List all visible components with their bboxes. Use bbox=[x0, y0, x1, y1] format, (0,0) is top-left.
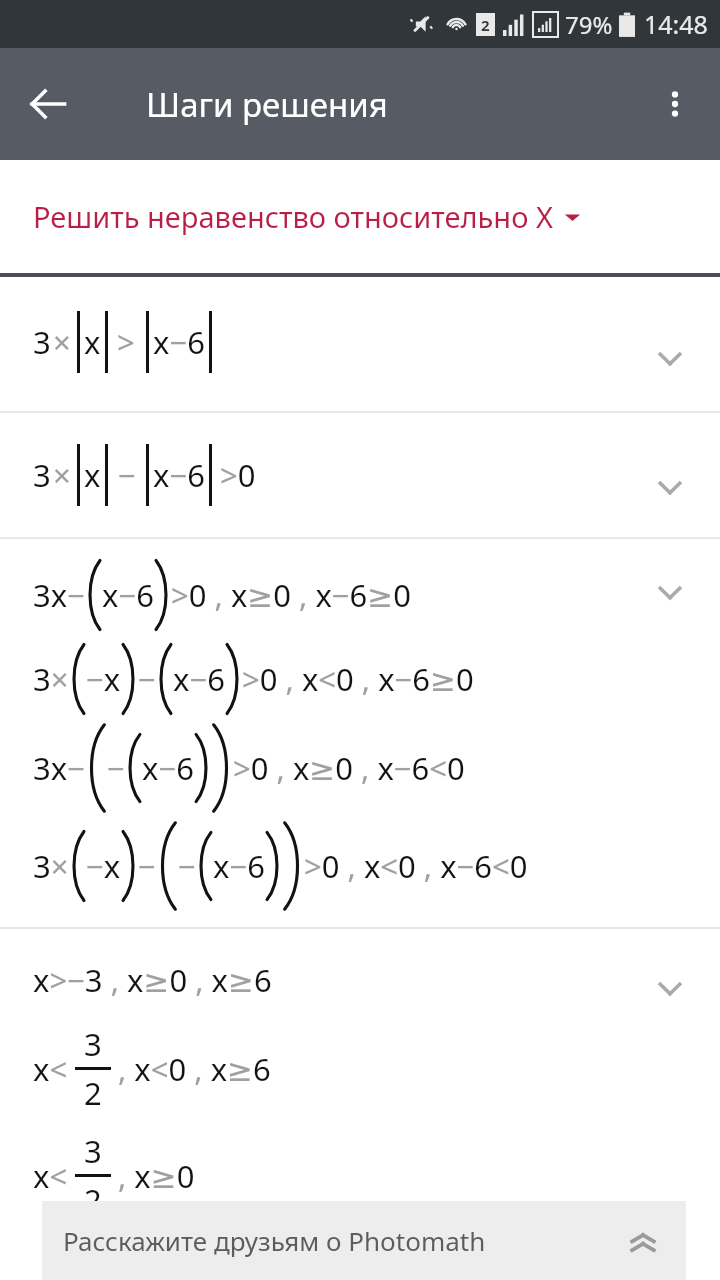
staticText: x< bbox=[33, 1155, 68, 1197]
staticText: 3x− bbox=[33, 747, 85, 789]
staticText: > bbox=[117, 321, 135, 363]
staticText: 14:48 bbox=[644, 7, 708, 41]
staticText: 2 bbox=[84, 1072, 102, 1114]
button[interactable]: 3 bbox=[0, 311, 720, 377]
staticText: 3x− bbox=[33, 574, 85, 616]
staticText: x−6 bbox=[102, 574, 154, 616]
staticText: x>−3 , x≥0 , x≥6 bbox=[33, 959, 272, 1001]
staticText: , x<0 , x≥6 bbox=[118, 1048, 271, 1090]
staticText: 3 bbox=[84, 1130, 102, 1172]
staticText: >0 , x<0 , x−6<0 bbox=[304, 845, 528, 887]
button[interactable]: 3x− bbox=[0, 539, 720, 911]
button[interactable]: Ещё bbox=[646, 75, 704, 133]
staticText: Расскажите друзьям о Photomath bbox=[63, 1223, 620, 1258]
staticText: >0 , x<0 , x−6≥0 bbox=[242, 658, 474, 700]
button[interactable]: 3 bbox=[0, 444, 720, 506]
button[interactable]: Решить неравенство относительно X bbox=[0, 160, 720, 273]
staticText: 2 bbox=[84, 1179, 102, 1221]
staticText: − bbox=[107, 747, 125, 789]
staticText: 3 bbox=[84, 1023, 102, 1065]
other: Развернуть bbox=[620, 1218, 666, 1264]
staticText: x−6 bbox=[173, 658, 225, 700]
staticText: − bbox=[138, 658, 156, 700]
staticText: 3× bbox=[33, 658, 69, 700]
staticText: , x≥0 bbox=[118, 1155, 195, 1197]
staticText: x−6 bbox=[153, 454, 205, 496]
staticText: >0 , x≥0 , x−6<0 bbox=[233, 747, 465, 789]
staticText: 2 bbox=[481, 15, 490, 35]
staticText: × bbox=[53, 321, 71, 363]
staticText: x−6 bbox=[142, 747, 194, 789]
staticText: 3 bbox=[33, 454, 51, 496]
staticText: −x bbox=[86, 845, 121, 887]
staticText: x bbox=[84, 321, 101, 363]
button[interactable]: x>−3 , x≥0 , x≥6 bbox=[0, 929, 720, 1221]
staticText: Шаги решения bbox=[146, 82, 388, 127]
button[interactable]: Назад bbox=[16, 72, 80, 136]
staticText: −x bbox=[86, 658, 121, 700]
staticText: − bbox=[118, 454, 136, 496]
staticText: 79% bbox=[565, 8, 613, 41]
staticText: x−6 bbox=[213, 845, 265, 887]
staticText: >0 , x≥0 , x−6≥0 bbox=[171, 574, 411, 616]
staticText: × bbox=[53, 454, 71, 496]
staticText: x bbox=[84, 454, 101, 496]
staticText: Решить неравенство относительно X bbox=[33, 197, 553, 236]
staticText: 3 bbox=[33, 321, 51, 363]
button[interactable]: Расскажите друзьям о Photomath bbox=[42, 1201, 686, 1280]
staticText: x< bbox=[33, 1048, 68, 1090]
staticText: 3× bbox=[33, 845, 69, 887]
staticText: − bbox=[138, 845, 156, 887]
staticText: − bbox=[178, 845, 196, 887]
staticText: x−6 bbox=[153, 321, 205, 363]
staticText: >0 bbox=[220, 454, 256, 496]
